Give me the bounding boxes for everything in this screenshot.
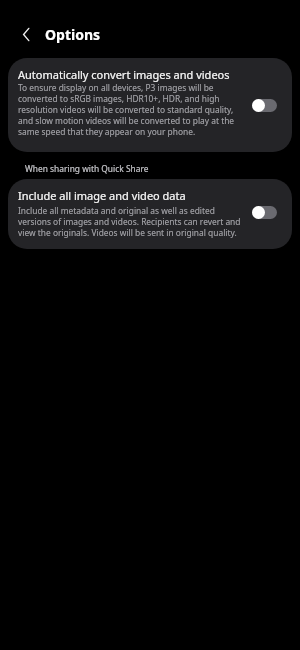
staticText: To ensure display on all devices, P3 ima… <box>18 82 238 137</box>
button[interactable]: Toggle <box>252 98 277 112</box>
button[interactable]: Automatically convert images and videos <box>8 58 292 152</box>
staticText: When sharing with Quick Share <box>25 163 149 174</box>
button[interactable]: Toggle <box>252 205 277 219</box>
button[interactable]: Include all image and video data <box>8 179 292 249</box>
staticText: Automatically convert images and videos <box>18 67 230 82</box>
staticText: Include all image and video data <box>18 188 186 203</box>
staticText: Include all metadata and original as wel… <box>18 205 244 238</box>
button[interactable]: Back <box>13 20 41 48</box>
staticText: Options <box>45 25 101 44</box>
